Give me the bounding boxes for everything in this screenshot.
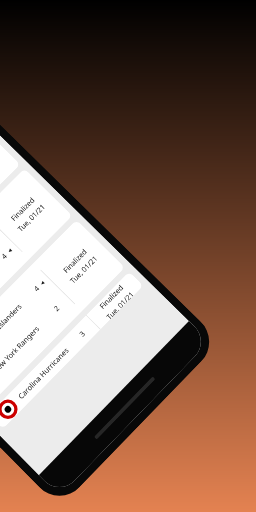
button[interactable]: Home xyxy=(94,376,156,440)
staticText: Tue, 01/21 xyxy=(68,253,100,286)
staticText: 3 xyxy=(77,328,87,339)
button[interactable]: Carolina Hurricanes xyxy=(0,168,72,357)
button[interactable]: New York Islanders xyxy=(0,118,20,305)
staticText: 2 xyxy=(51,303,62,313)
button[interactable]: Carolina Hurricanes xyxy=(0,271,144,429)
staticText: New York Islanders xyxy=(0,301,24,355)
staticText: Tue, 01/21 xyxy=(15,202,47,234)
staticText: Finalized xyxy=(97,282,125,311)
staticText: New York Rangers xyxy=(0,323,42,375)
button[interactable]: New York Islanders xyxy=(0,220,125,410)
staticText: Carolina Hurricanes xyxy=(16,345,71,401)
staticText: Finalized xyxy=(61,247,89,275)
staticText: 4 xyxy=(0,251,9,261)
staticText: Finalized xyxy=(9,195,37,223)
staticText: Tue, 01/21 xyxy=(104,289,135,320)
staticText: 4 xyxy=(31,283,42,294)
